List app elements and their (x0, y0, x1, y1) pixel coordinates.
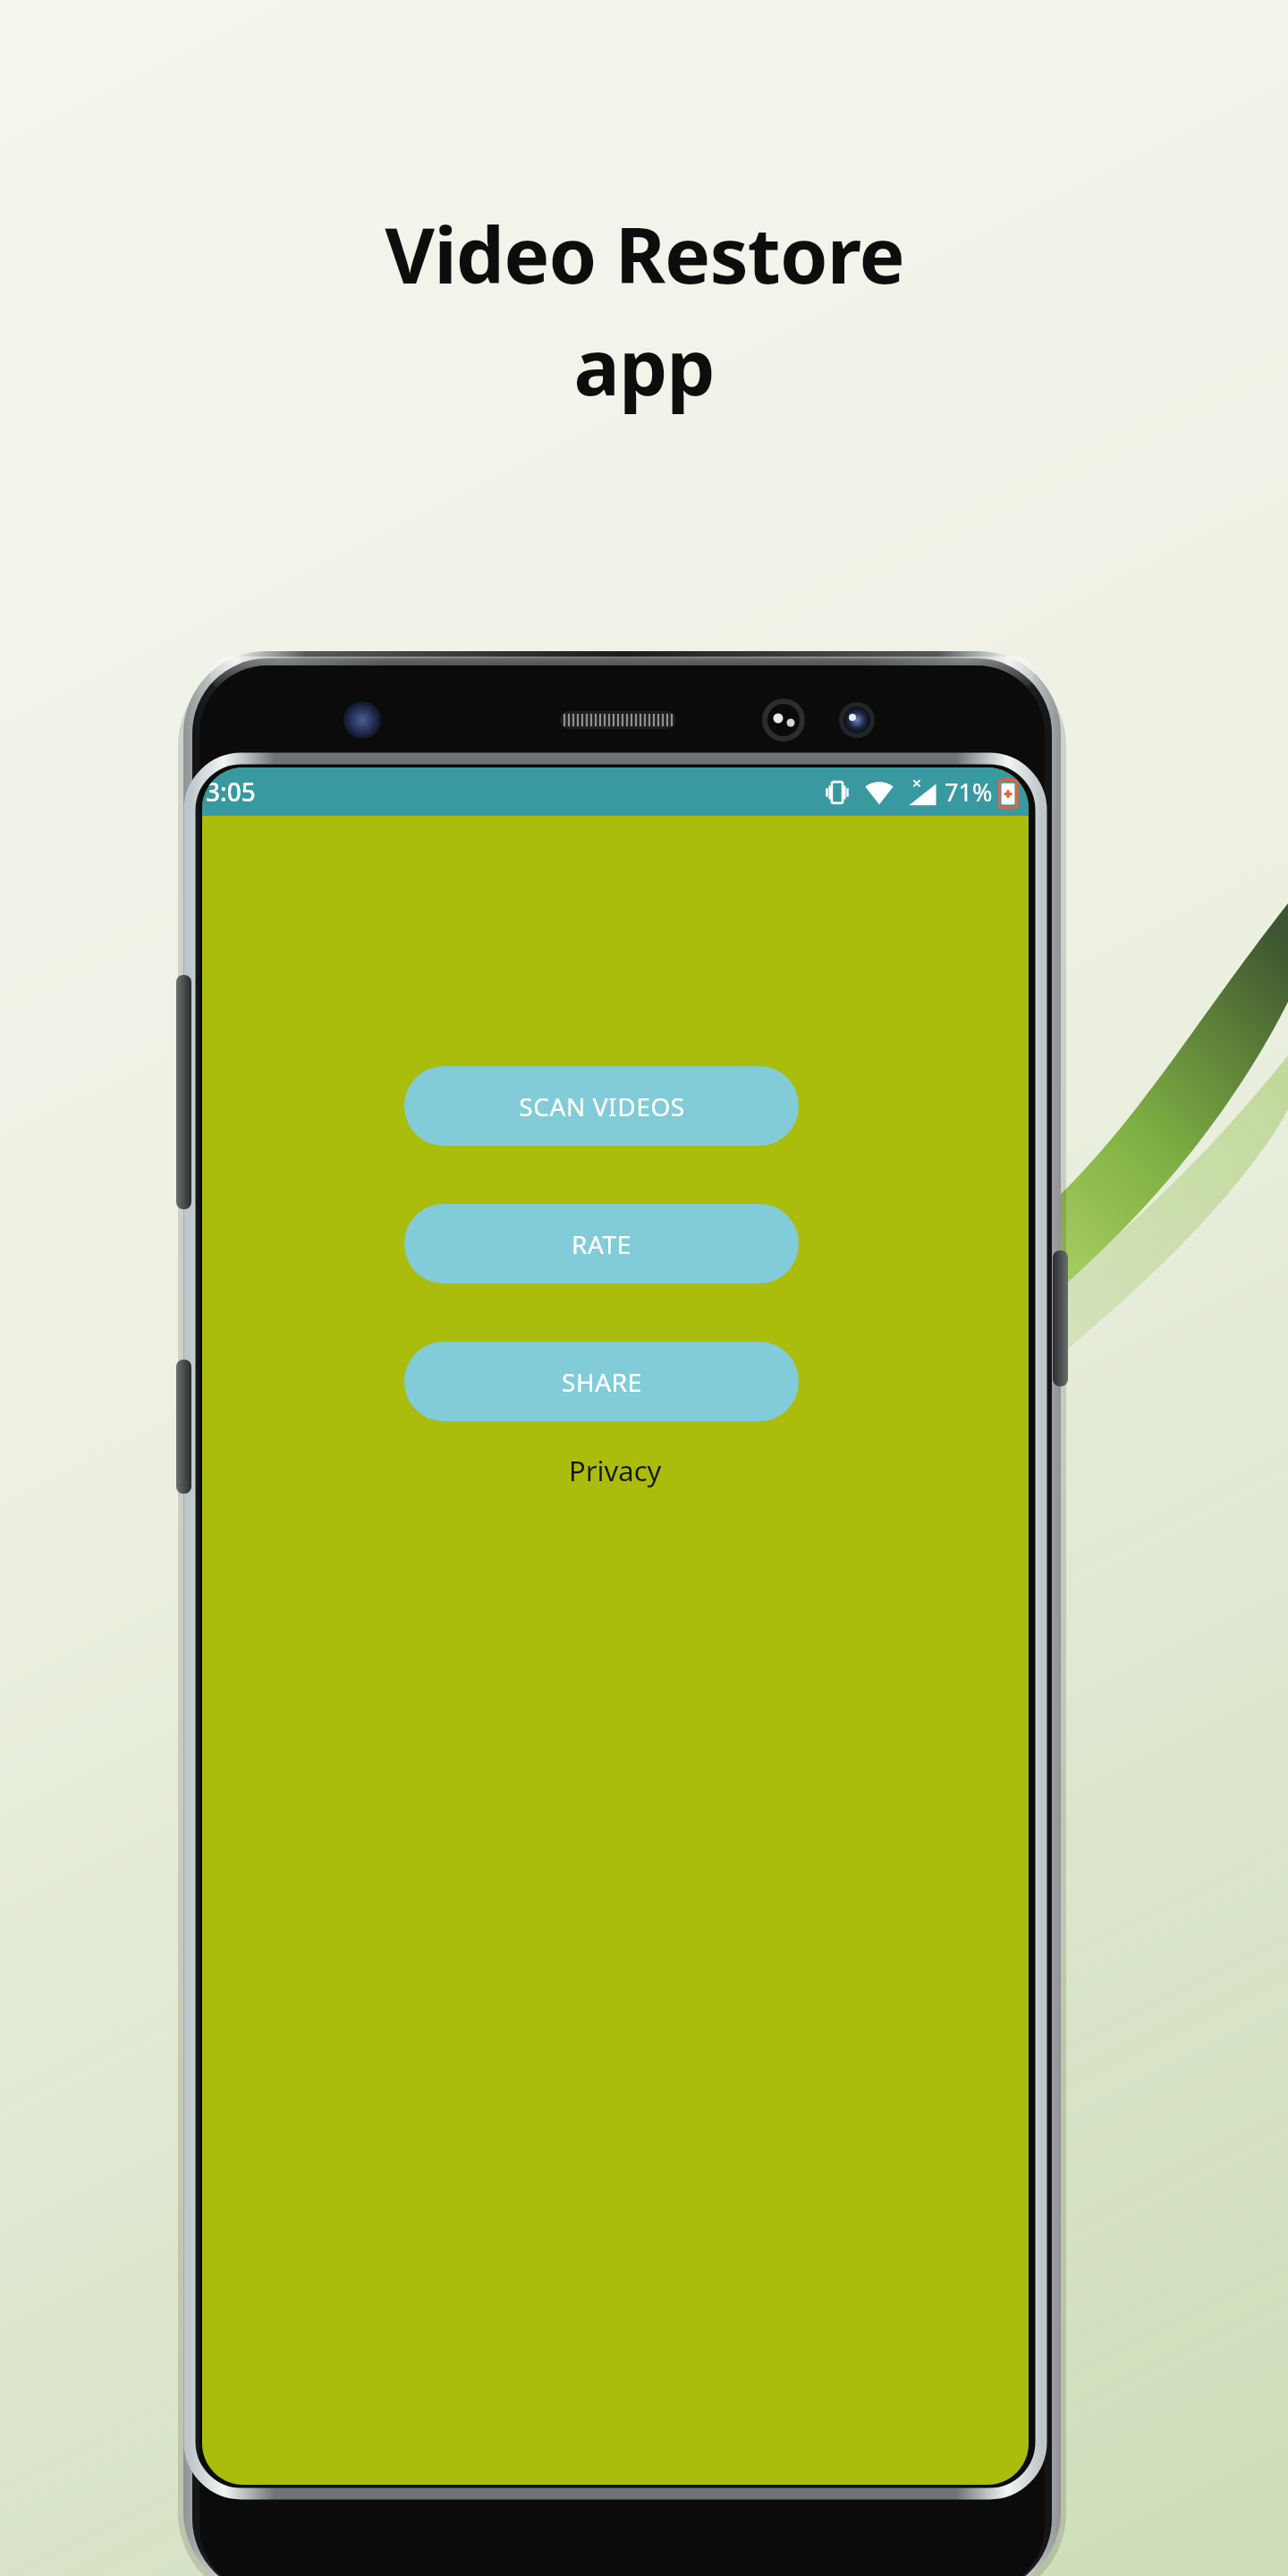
staticText: SCAN VIDEOS (519, 1089, 685, 1123)
staticText: 71% (945, 775, 993, 809)
staticText: app (573, 313, 715, 418)
button[interactable]: SCAN VIDEOS (404, 1066, 799, 1146)
button[interactable]: SHARE (404, 1342, 799, 1421)
staticText: Privacy (569, 1452, 662, 1489)
button[interactable]: Privacy (556, 1446, 674, 1495)
staticText: SHARE (562, 1365, 642, 1399)
staticText: 3:05 (206, 775, 256, 809)
staticText: Video Restore (385, 201, 904, 306)
button[interactable]: RATE (404, 1204, 799, 1284)
staticText: RATE (572, 1227, 631, 1261)
